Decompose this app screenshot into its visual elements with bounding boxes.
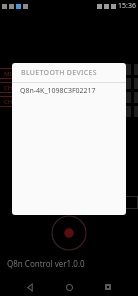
button[interactable]: Record: [51, 215, 87, 251]
staticText: Q8n-4K_1098C3F02217: [20, 86, 96, 96]
button[interactable]: CH2: [0, 96, 18, 107]
button[interactable]: MIC: [0, 68, 18, 79]
staticText: Q8n Control ver1.0.0: [7, 258, 85, 269]
staticText: CH1: [4, 84, 16, 92]
staticText: 15:36: [118, 1, 136, 11]
button[interactable]: Q8n-4K_1098C3F02217: [12, 83, 126, 99]
button[interactable]: CH1: [0, 82, 18, 93]
button[interactable]: Back: [21, 278, 39, 296]
button[interactable]: Home: [60, 278, 78, 296]
button[interactable]: Recents: [99, 278, 117, 296]
staticText: CH2: [4, 98, 16, 106]
staticText: MIC: [4, 70, 16, 78]
staticText: BLUETOOTH DEVICES: [21, 68, 97, 78]
